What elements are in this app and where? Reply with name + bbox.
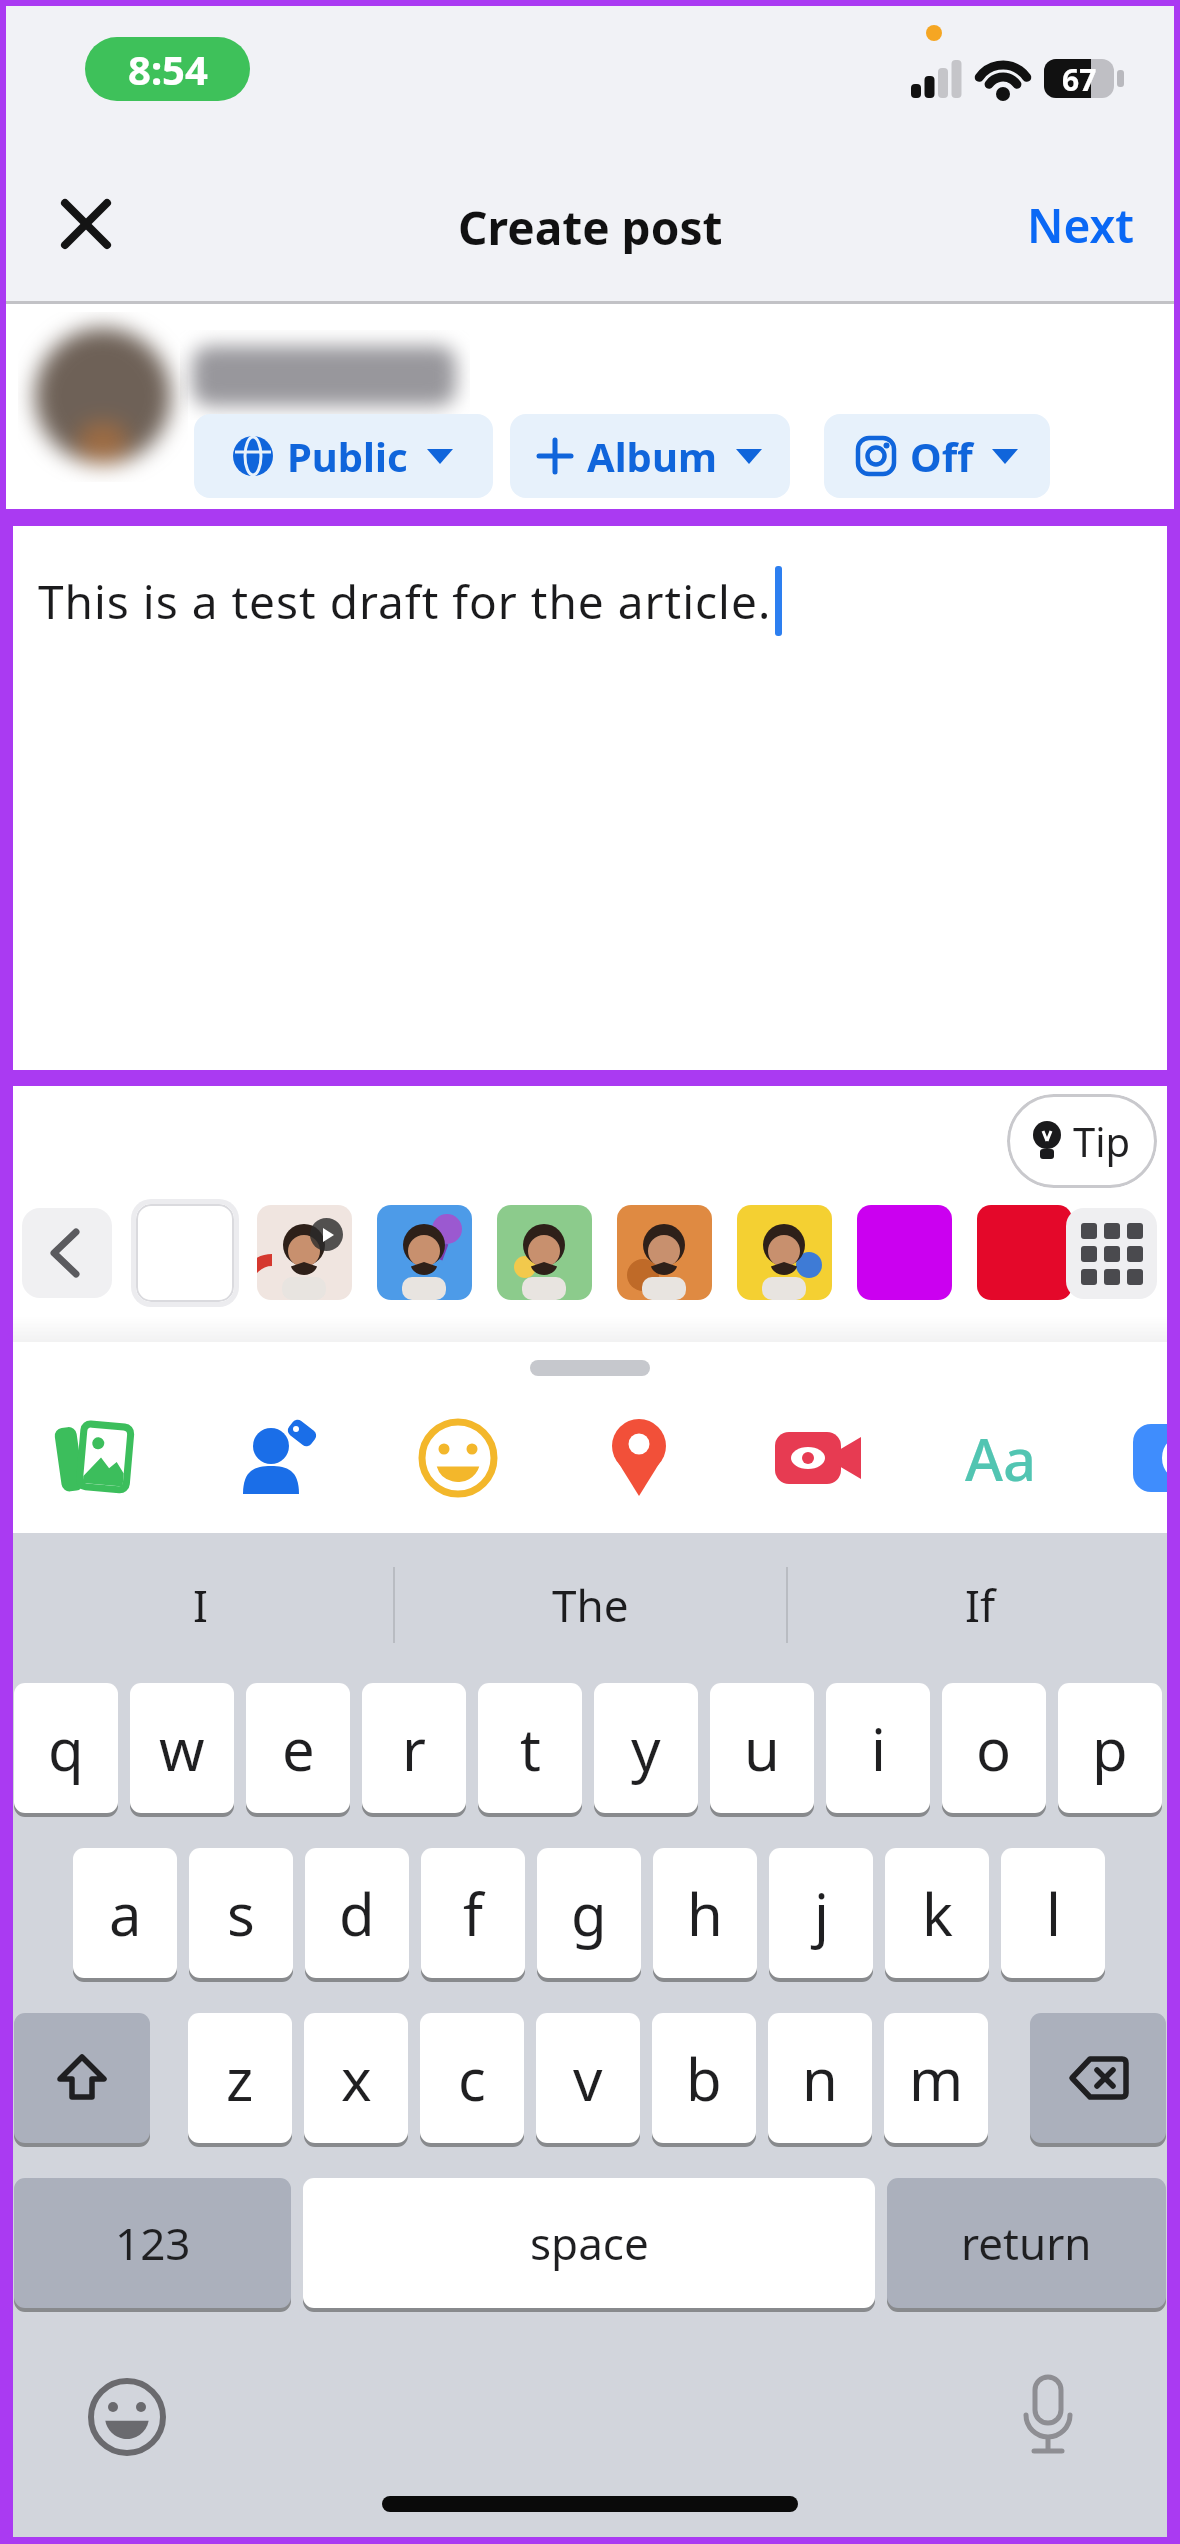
button[interactable]: x	[304, 2013, 408, 2143]
staticText: w	[159, 1709, 205, 1788]
button[interactable]	[50, 188, 122, 260]
button[interactable]: y	[594, 1683, 698, 1813]
staticText: v	[573, 2039, 603, 2118]
button[interactable]: return	[887, 2178, 1166, 2308]
staticText: This is a test draft for the article.	[38, 570, 772, 633]
button[interactable]	[497, 1205, 592, 1300]
button[interactable]: s	[189, 1848, 293, 1978]
button[interactable]	[1018, 2375, 1078, 2465]
staticText: return	[961, 2213, 1092, 2273]
button[interactable]	[136, 1204, 234, 1302]
staticText: q	[48, 1709, 84, 1788]
button[interactable]: e	[246, 1683, 350, 1813]
button[interactable]: k	[885, 1848, 989, 1978]
button[interactable]	[617, 1205, 712, 1300]
staticText: o	[976, 1709, 1012, 1788]
button[interactable]	[257, 1205, 352, 1300]
staticText: k	[922, 1874, 953, 1953]
button[interactable]: b	[652, 2013, 756, 2143]
button[interactable]: The	[450, 1570, 730, 1640]
button[interactable]	[377, 1205, 472, 1300]
button[interactable]: n	[768, 2013, 872, 2143]
button[interactable]	[14, 2013, 150, 2143]
button[interactable]: z	[188, 2013, 292, 2143]
button[interactable]: Tip	[1007, 1094, 1157, 1188]
staticText: The	[552, 1575, 629, 1635]
button[interactable]	[594, 1413, 684, 1503]
staticText: I	[193, 1575, 208, 1635]
staticText: h	[687, 1874, 723, 1953]
button[interactable]	[775, 1413, 865, 1503]
staticText: Next	[1027, 194, 1134, 257]
button[interactable]: Aa	[941, 1413, 1061, 1503]
staticText: j	[814, 1874, 829, 1953]
button[interactable]: w	[130, 1683, 234, 1813]
staticText: b	[686, 2039, 722, 2118]
staticText: n	[802, 2039, 838, 2118]
staticText: Create post	[458, 196, 723, 254]
button[interactable]: f	[421, 1848, 525, 1978]
staticText: r	[402, 1709, 426, 1788]
button[interactable]: l	[1001, 1848, 1105, 1978]
button[interactable]: Public	[194, 414, 493, 498]
button[interactable]: Off	[824, 414, 1050, 498]
button[interactable]	[51, 1413, 141, 1503]
button[interactable]: m	[884, 2013, 988, 2143]
staticText: e	[282, 1709, 315, 1788]
staticText: d	[339, 1874, 375, 1953]
button[interactable]: t	[478, 1683, 582, 1813]
staticText: 123	[115, 2213, 191, 2273]
staticText: u	[744, 1709, 780, 1788]
button[interactable]: If	[840, 1570, 1120, 1640]
button[interactable]: c	[420, 2013, 524, 2143]
staticText: a	[109, 1874, 142, 1953]
staticText: y	[631, 1709, 661, 1788]
button[interactable]: 8:54	[85, 37, 250, 101]
button[interactable]: I	[60, 1570, 340, 1640]
button[interactable]	[1030, 2013, 1166, 2143]
staticText: 8:54	[128, 42, 208, 96]
staticText: If	[965, 1575, 996, 1635]
staticText: Public	[287, 429, 408, 483]
button[interactable]: Album	[510, 414, 790, 498]
staticText: Tip	[1073, 1114, 1131, 1168]
button[interactable]: o	[942, 1683, 1046, 1813]
staticText: m	[909, 2039, 964, 2118]
staticText: g	[571, 1874, 607, 1953]
staticText: t	[520, 1709, 541, 1788]
button[interactable]: d	[305, 1848, 409, 1978]
button[interactable]	[857, 1205, 952, 1300]
button[interactable]	[87, 2377, 167, 2457]
button[interactable]: q	[14, 1683, 118, 1813]
staticText: p	[1092, 1709, 1128, 1788]
staticText: space	[530, 2213, 649, 2273]
button[interactable]: space	[303, 2178, 875, 2308]
button[interactable]: r	[362, 1683, 466, 1813]
staticText: Off	[910, 429, 973, 483]
button[interactable]	[977, 1205, 1072, 1300]
button[interactable]	[1066, 1208, 1157, 1299]
button[interactable]	[22, 1208, 112, 1298]
staticText: Album	[587, 429, 717, 483]
button[interactable]	[413, 1413, 503, 1503]
staticText: f	[463, 1874, 483, 1953]
staticText: l	[1046, 1874, 1061, 1953]
button[interactable]: h	[653, 1848, 757, 1978]
staticText: c	[458, 2039, 486, 2118]
button[interactable]: j	[769, 1848, 873, 1978]
button[interactable]	[737, 1205, 832, 1300]
button[interactable]: i	[826, 1683, 930, 1813]
staticText: s	[227, 1874, 255, 1953]
button[interactable]	[232, 1413, 322, 1503]
staticText: x	[341, 2039, 372, 2118]
button[interactable]: a	[73, 1848, 177, 1978]
button[interactable]: 123	[14, 2178, 291, 2308]
staticText: Aa	[965, 1419, 1037, 1498]
button[interactable]: p	[1058, 1683, 1162, 1813]
button[interactable]: g	[537, 1848, 641, 1978]
button[interactable]: v	[536, 2013, 640, 2143]
button[interactable]: Next	[1000, 190, 1160, 260]
button[interactable]: u	[710, 1683, 814, 1813]
staticText: i	[871, 1709, 886, 1788]
staticText: z	[226, 2039, 254, 2118]
